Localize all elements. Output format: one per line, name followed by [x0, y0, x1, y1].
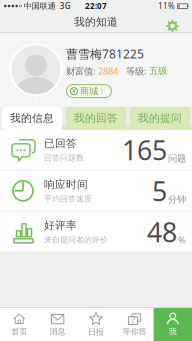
staticText: 165 — [122, 132, 167, 167]
staticText: 曹雪梅781225 — [66, 46, 144, 62]
staticText: 回答问题数 — [44, 153, 84, 163]
staticText: 我的知道 — [74, 15, 118, 28]
staticText: 日报 — [88, 327, 104, 337]
staticText: 好评率 — [44, 219, 77, 232]
button[interactable]: 首页 — [0, 308, 38, 341]
button[interactable]: 商城 — [66, 77, 112, 98]
staticText: ? — [131, 315, 135, 325]
staticText: 11% — [158, 1, 175, 11]
staticText: 商城 — [80, 85, 98, 97]
staticText: % — [178, 234, 186, 246]
button[interactable]: 设置 — [166, 15, 192, 28]
staticText: 我的信息 — [10, 112, 54, 125]
staticText: 中国联通 — [24, 1, 56, 11]
staticText: 3G — [60, 1, 71, 11]
staticText: 问题 — [168, 152, 186, 164]
button[interactable]: ? — [115, 308, 154, 341]
staticText: 2884 — [98, 65, 118, 77]
button[interactable]: 我的回答 — [66, 107, 126, 130]
staticText: 来自提问者的评价 — [44, 235, 108, 245]
staticText: 五级 — [149, 65, 167, 77]
staticText: 〉 — [100, 86, 108, 96]
staticText: 响应时间 — [44, 178, 88, 191]
staticText: 我 — [169, 327, 177, 336]
staticText: 平均回答速度 — [44, 194, 92, 204]
staticText: 22:07 — [85, 1, 107, 11]
staticText: 财富值: — [66, 65, 98, 77]
staticText: 首页 — [11, 327, 27, 336]
button[interactable]: 消息 — [38, 308, 77, 341]
button[interactable]: 我 — [154, 308, 192, 341]
staticText: 等你答 — [122, 327, 146, 336]
button[interactable]: 日报 — [77, 308, 115, 341]
staticText: 消息 — [50, 327, 66, 336]
staticText: 分钟 — [168, 193, 186, 205]
button[interactable]: 我的信息 — [2, 107, 62, 130]
staticText: 我的回答 — [74, 112, 118, 125]
staticText: 5 — [152, 173, 167, 208]
staticText: 已回答 — [44, 137, 77, 150]
staticText: 等级: — [126, 65, 149, 77]
button[interactable]: 我的提问 — [130, 107, 190, 130]
staticText: 我的提问 — [138, 112, 182, 125]
staticText: 48 — [147, 214, 177, 249]
